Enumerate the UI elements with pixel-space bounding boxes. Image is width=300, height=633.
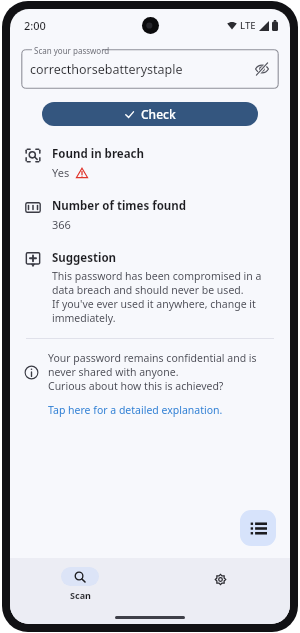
staticText: 366 [52,217,71,232]
button[interactable]: correcthorsebatterystaple [21,49,279,89]
button[interactable]: Check [42,102,258,126]
staticText: Tap here for a detailed explanation. [48,403,223,417]
staticText: Scan your password [34,45,110,56]
staticText: This password has been compromised in a … [52,269,262,325]
staticText: Check [141,106,176,122]
staticText: Suggestion [52,250,117,266]
staticText: LTE [240,19,256,32]
staticText: Your password remains confidential and i… [48,351,257,393]
button[interactable]: History list [240,510,276,546]
button[interactable]: Scan [10,558,150,610]
staticText: Found in breach [52,146,144,162]
staticText: 2:00 [24,18,46,33]
button[interactable]: Tap here for a detailed explanation. [48,403,223,417]
staticText: correcthorsebatterystaple [30,61,183,78]
button[interactable]: Show password [251,58,273,80]
staticText: Scan [70,589,91,601]
staticText: Yes [52,165,70,180]
button[interactable]: Settings [150,558,290,610]
staticText: Number of times found [52,198,187,214]
